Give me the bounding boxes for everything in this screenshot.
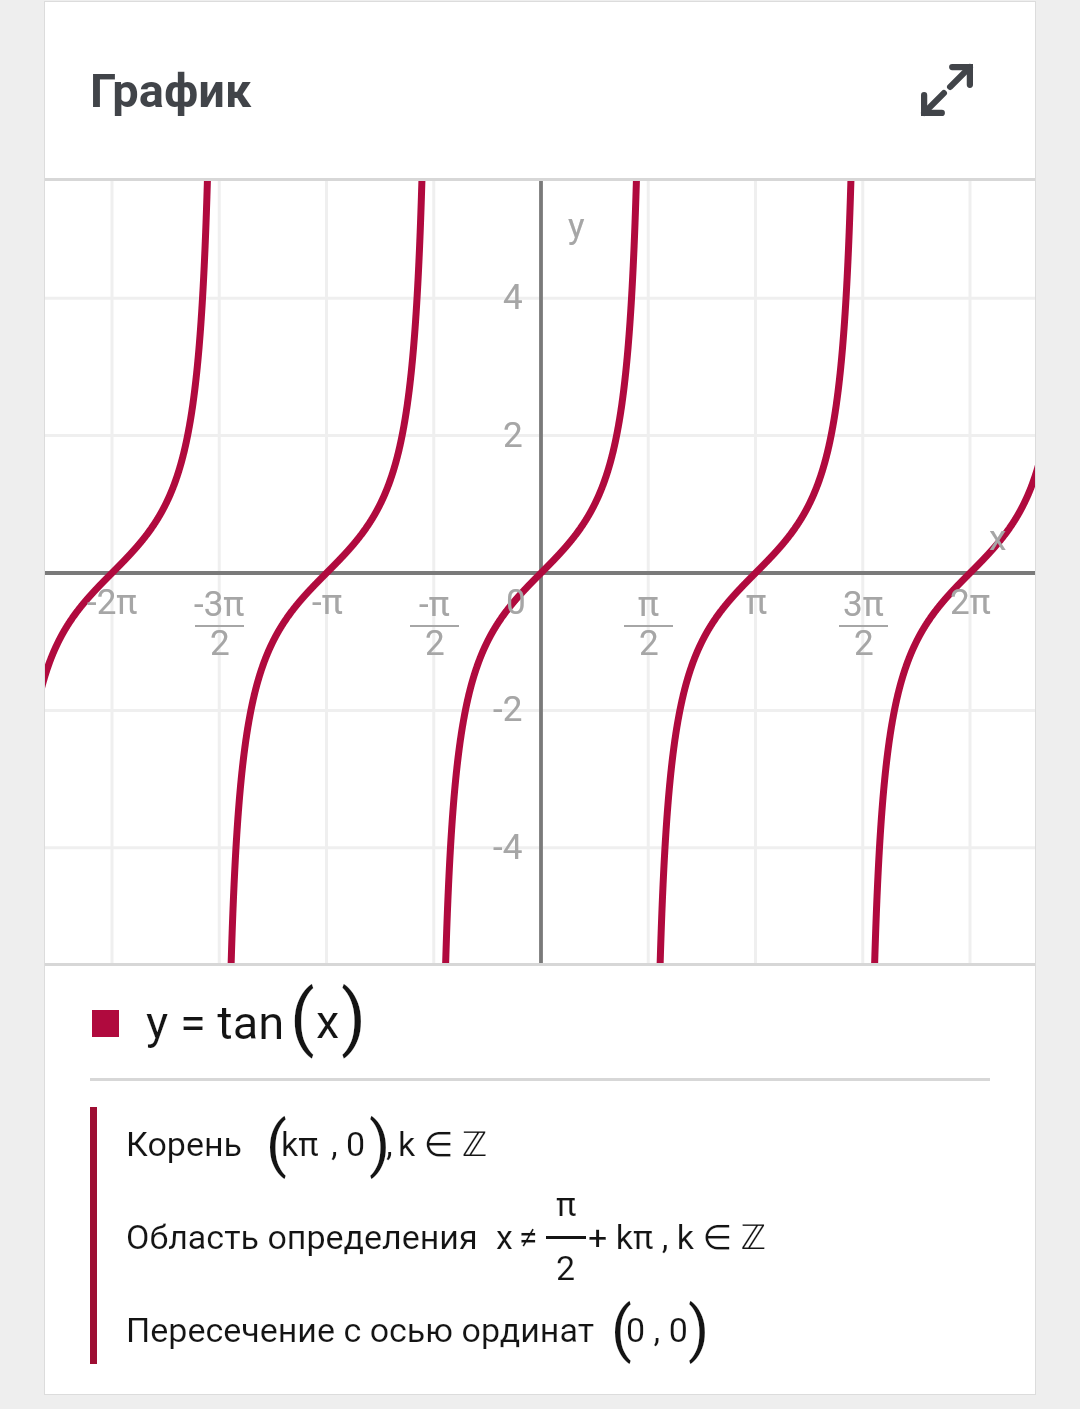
staticText: 2π <box>950 582 991 623</box>
staticText: ≠ <box>519 1217 538 1257</box>
staticText: -π <box>419 584 450 625</box>
staticText: 0 <box>506 582 526 623</box>
staticText: 2 <box>854 623 874 664</box>
staticText: π <box>638 584 659 625</box>
staticText: ) <box>688 1293 710 1364</box>
button[interactable]: y = tan <box>45 966 1035 1078</box>
staticText: 2 <box>425 623 445 664</box>
staticText: 2 <box>639 623 659 664</box>
staticText: Корень <box>126 1124 242 1164</box>
staticText: -π <box>312 582 343 623</box>
staticText: 0 <box>346 1124 366 1164</box>
staticText: Область определения <box>126 1217 478 1257</box>
staticText: 4 <box>503 277 523 318</box>
staticText: ) <box>341 975 367 1059</box>
staticText: + kπ , k ∈ ℤ <box>588 1217 766 1257</box>
staticText: Пересечение с осью ординат <box>126 1310 595 1350</box>
staticText: -3π <box>194 584 245 625</box>
staticText: k ∈ ℤ <box>398 1124 488 1164</box>
staticText: π <box>556 1184 577 1224</box>
staticText: ( <box>290 975 315 1059</box>
staticText: π <box>746 582 767 623</box>
staticText: x <box>316 994 340 1049</box>
staticText: ) <box>369 1108 391 1179</box>
staticText: y = tan <box>146 995 285 1050</box>
staticText: , <box>331 1124 338 1164</box>
staticText: , <box>386 1124 393 1164</box>
staticText: -2 <box>493 689 523 730</box>
staticText: График <box>90 63 252 118</box>
staticText: 2 <box>503 415 523 456</box>
button[interactable]: Пересечение с осью ординат <box>45 1267 1035 1360</box>
staticText: ( <box>611 1293 632 1364</box>
staticText: ( <box>266 1108 287 1179</box>
button[interactable]: Expand graph <box>897 40 997 140</box>
staticText: -4 <box>493 827 523 868</box>
button[interactable]: Область определения <box>45 1174 1035 1267</box>
staticText: 2 <box>210 623 230 664</box>
staticText: y <box>568 206 585 247</box>
staticText: 3π <box>843 584 884 625</box>
staticText: x <box>989 518 1007 559</box>
staticText: kπ <box>281 1124 319 1164</box>
staticText: 0 , 0 <box>626 1310 688 1350</box>
staticText: -2π <box>87 582 138 623</box>
staticText: x <box>496 1217 513 1257</box>
staticText: 2 <box>556 1248 576 1288</box>
button[interactable]: Корень <box>45 1081 1035 1174</box>
